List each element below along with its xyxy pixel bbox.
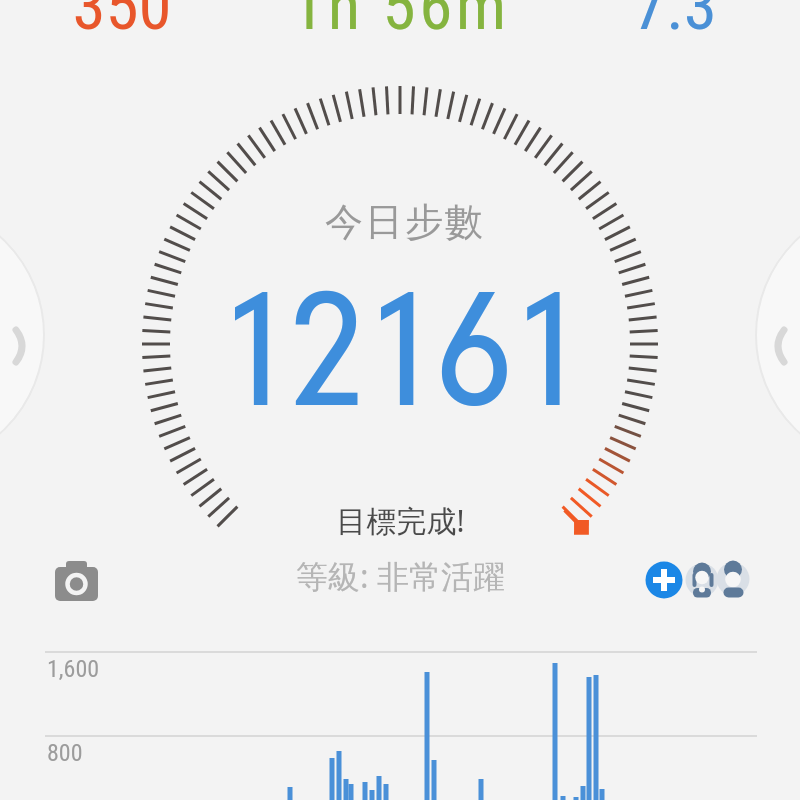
button[interactable] [644,560,684,600]
staticText: 12161 [225,247,580,450]
staticText: 今日步數 [324,198,484,246]
staticText: 1h 56m [291,0,510,46]
staticText: 800 [47,739,83,767]
staticText: 目標完成! [336,500,465,541]
staticText: 1,600 [47,655,100,683]
button[interactable] [50,558,102,606]
staticText: 等級: 非常活躍 [296,554,505,598]
staticText: 7.3 [633,0,717,46]
button[interactable] [684,562,720,598]
button[interactable] [715,562,751,598]
staticText: 350 [72,0,172,46]
